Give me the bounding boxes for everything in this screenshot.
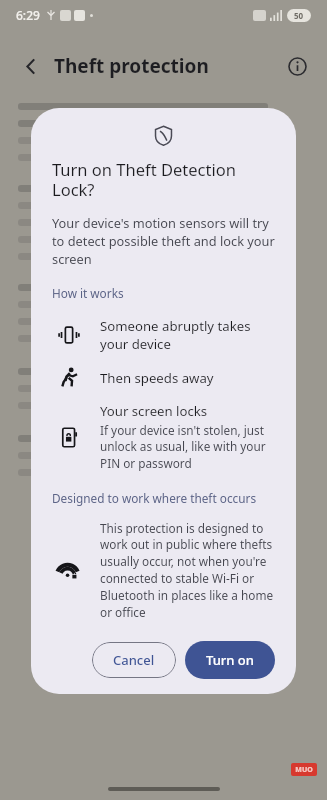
staticText: Then speeds away bbox=[100, 369, 214, 387]
staticText: MUO bbox=[295, 765, 313, 775]
staticText: Turn on bbox=[206, 651, 254, 669]
staticText: 6:29 bbox=[16, 7, 40, 23]
staticText: Designed to work where theft occurs bbox=[52, 490, 257, 506]
staticText: If your device isn't stolen, just unlock… bbox=[100, 422, 275, 472]
staticText: This protection is designed to work out … bbox=[100, 520, 275, 621]
button[interactable]: Info bbox=[281, 50, 313, 82]
staticText: Someone abruptly takes your device bbox=[100, 317, 275, 353]
button[interactable]: Turn on bbox=[185, 641, 275, 679]
staticText: Turn on Theft Detection Lock? bbox=[52, 158, 275, 201]
staticText: Cancel bbox=[113, 651, 155, 669]
staticText: 50 bbox=[294, 10, 304, 21]
button[interactable]: Back bbox=[14, 49, 48, 83]
staticText: How it works bbox=[52, 285, 124, 301]
staticText: Your device's motion sensors will try to… bbox=[52, 214, 275, 268]
staticText: Your screen locks bbox=[100, 402, 208, 420]
button[interactable]: Cancel bbox=[92, 642, 176, 678]
staticText: Theft protection bbox=[54, 53, 209, 79]
